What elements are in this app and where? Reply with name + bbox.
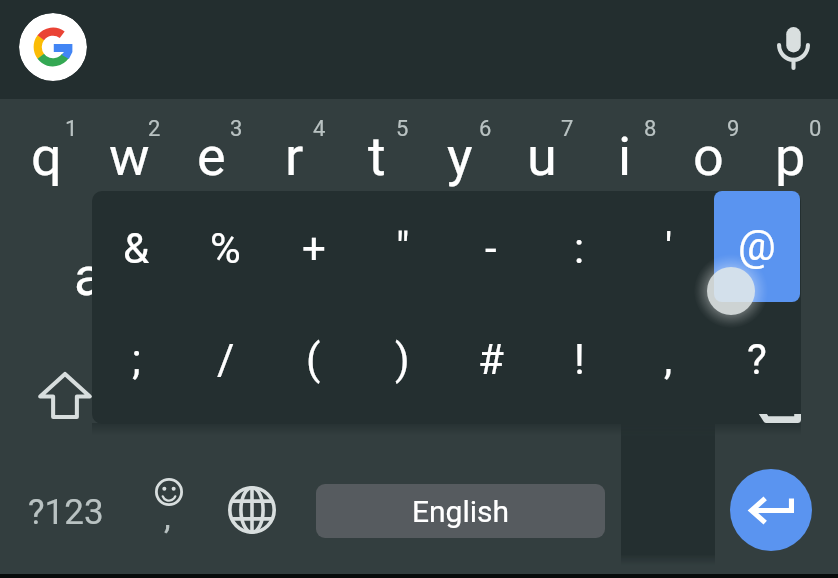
button[interactable]: # [446, 307, 535, 424]
staticText: 1 [65, 116, 78, 142]
staticText: # [478, 335, 504, 384]
staticText: + [302, 224, 326, 273]
staticText: @ [738, 221, 776, 270]
staticText: r [285, 125, 304, 188]
button[interactable]: " [358, 191, 447, 307]
button[interactable]: i [583, 99, 667, 219]
button[interactable]: ?123 [24, 460, 108, 560]
button[interactable]: ; [92, 307, 181, 424]
staticText: , [164, 497, 171, 537]
staticText: : [574, 224, 585, 273]
button[interactable]: : [535, 191, 624, 307]
staticText: w [109, 125, 150, 188]
button[interactable]: o [666, 99, 750, 219]
button[interactable]: u [500, 99, 584, 219]
button[interactable]: @ [712, 191, 801, 307]
staticText: 6 [479, 116, 492, 142]
button[interactable]: t [335, 99, 419, 219]
button[interactable]: Emoji [126, 460, 210, 560]
button[interactable]: / [181, 307, 270, 424]
staticText: 7 [561, 116, 574, 142]
staticText: ? [747, 335, 767, 384]
staticText: " [396, 224, 410, 273]
staticText: / [217, 335, 235, 384]
button[interactable]: Backspace [732, 344, 816, 444]
staticText: t [368, 125, 386, 188]
button[interactable]: y [418, 99, 502, 219]
staticText: 5 [396, 116, 409, 142]
staticText: 0 [809, 116, 822, 142]
staticText: a [74, 245, 104, 308]
staticText: English [412, 494, 510, 529]
staticText: - [485, 224, 497, 273]
staticText: @ [738, 224, 776, 273]
staticText: ) [395, 335, 410, 384]
button[interactable]: a [47, 219, 131, 339]
button[interactable]: % [181, 191, 270, 307]
staticText: ?123 [28, 492, 104, 533]
button[interactable]: & [92, 191, 181, 307]
button[interactable]: ! [535, 307, 624, 424]
button[interactable]: - [446, 191, 535, 307]
staticText: ( [306, 335, 321, 384]
button[interactable]: Shift [23, 345, 107, 445]
staticText: ; [132, 335, 141, 384]
staticText: ! [574, 335, 585, 384]
button[interactable]: r [252, 99, 336, 219]
staticText: i [618, 125, 632, 188]
button[interactable]: ) [358, 307, 447, 424]
staticText: q [31, 125, 62, 188]
staticText: % [210, 224, 241, 273]
button[interactable]: e [169, 99, 253, 219]
button[interactable]: Google [19, 13, 87, 81]
staticText: p [775, 125, 806, 188]
staticText: & [123, 224, 150, 273]
staticText: 9 [727, 116, 740, 142]
staticText: u [527, 125, 557, 188]
button[interactable]: ( [269, 307, 358, 424]
button[interactable]: p [748, 99, 832, 219]
staticText: 3 [230, 116, 243, 142]
button[interactable]: @ [714, 191, 800, 302]
staticText: ' [665, 224, 673, 273]
button[interactable]: Enter [730, 469, 812, 551]
button[interactable]: q [4, 99, 88, 219]
staticText: , [664, 335, 673, 384]
button[interactable]: + [269, 191, 358, 307]
button[interactable]: , [624, 307, 713, 424]
button[interactable]: Voice input [761, 15, 826, 80]
button[interactable]: ' [624, 191, 713, 307]
button[interactable]: ? [712, 307, 801, 424]
staticText: o [693, 125, 724, 188]
button[interactable]: w [87, 99, 171, 219]
staticText: 4 [313, 116, 326, 142]
button[interactable]: English [316, 484, 605, 538]
button[interactable]: Switch language [210, 460, 294, 560]
staticText: e [197, 125, 226, 188]
staticText: 2 [148, 116, 161, 142]
staticText: 8 [644, 116, 657, 142]
staticText: y [447, 125, 473, 188]
